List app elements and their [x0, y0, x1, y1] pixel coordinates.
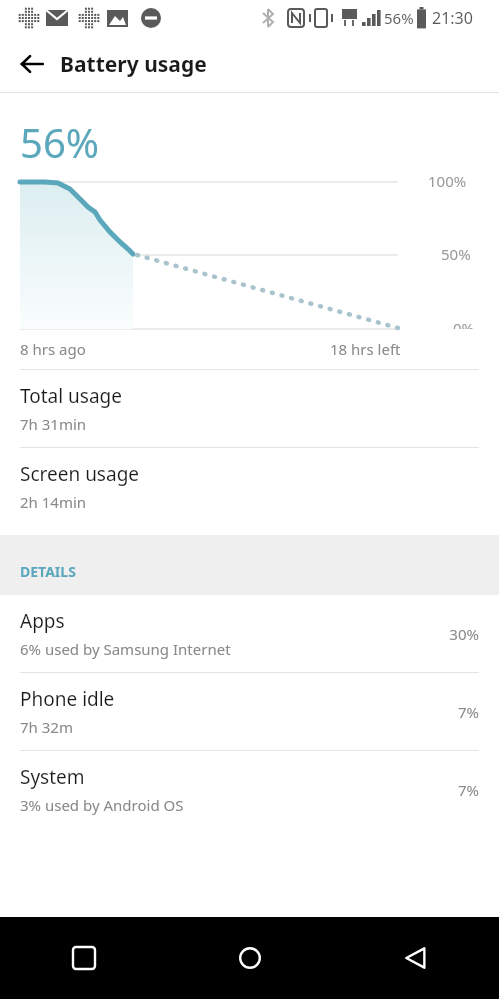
staticText: 7h 31min	[20, 414, 87, 434]
staticText: Screen usage	[20, 461, 140, 487]
staticText: 3% used by Android OS	[20, 795, 184, 815]
staticText: DETAILS	[20, 562, 76, 581]
button[interactable]: Recent apps	[0, 917, 167, 999]
button[interactable]: Back	[12, 44, 52, 84]
staticText: 2h 14min	[20, 492, 87, 512]
button[interactable]: Screen usage	[0, 448, 499, 525]
button[interactable]: Home	[167, 917, 333, 999]
button[interactable]: Back	[333, 917, 499, 999]
staticText: Total usage	[20, 383, 122, 409]
staticText: 7%	[457, 780, 479, 800]
staticText: 7h 32m	[20, 717, 73, 737]
staticText: 30%	[449, 624, 479, 644]
staticText: 100%	[428, 171, 467, 191]
staticText: 18 hrs left	[330, 339, 401, 359]
staticText: Battery usage	[60, 50, 207, 79]
staticText: 56%	[384, 8, 414, 28]
staticText: Phone idle	[20, 686, 115, 712]
button[interactable]: Total usage	[0, 370, 499, 447]
staticText: 7%	[457, 702, 479, 722]
staticText: 56%	[20, 115, 99, 169]
staticText: 8 hrs ago	[20, 339, 86, 359]
staticText: 50%	[441, 244, 471, 264]
staticText: 6% used by Samsung Internet	[20, 639, 231, 659]
staticText: System	[20, 764, 85, 790]
staticText: 21:30	[432, 7, 473, 29]
button[interactable]: System	[0, 751, 499, 828]
staticText: Apps	[20, 608, 65, 634]
button[interactable]: Apps	[0, 595, 499, 672]
staticText: 0%	[453, 318, 475, 329]
button[interactable]: Phone idle	[0, 673, 499, 750]
